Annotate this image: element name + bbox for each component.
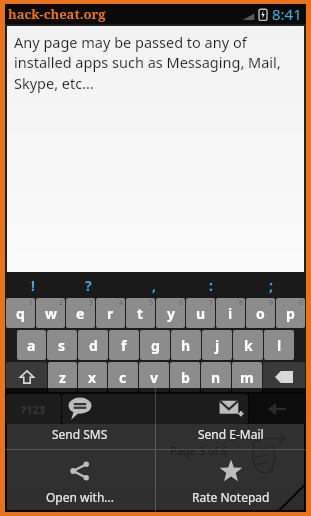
staticText: z bbox=[59, 368, 66, 387]
staticText: h bbox=[181, 336, 191, 355]
button[interactable]: w bbox=[36, 298, 65, 328]
staticText: y bbox=[167, 304, 175, 323]
staticText: m bbox=[240, 368, 254, 387]
staticText: p bbox=[286, 304, 295, 323]
button[interactable]: Shift bbox=[6, 362, 47, 392]
button[interactable]: m bbox=[232, 362, 262, 392]
button[interactable]: c bbox=[108, 362, 138, 392]
staticText: i bbox=[228, 304, 233, 323]
button[interactable]: l bbox=[264, 330, 294, 360]
button[interactable]: Rate Notepad bbox=[156, 450, 306, 512]
button[interactable]: g bbox=[140, 330, 170, 360]
staticText: 8 bbox=[239, 298, 244, 308]
staticText: 9 bbox=[269, 298, 274, 308]
staticText: ; bbox=[269, 276, 273, 295]
button[interactable]: ?123 bbox=[6, 394, 61, 424]
staticText: u bbox=[196, 304, 206, 323]
staticText: Open with... bbox=[46, 489, 114, 505]
staticText: 8:41 bbox=[272, 4, 302, 24]
staticText: c bbox=[119, 368, 127, 387]
staticText: 4 bbox=[119, 298, 124, 308]
staticText: v bbox=[150, 368, 158, 387]
staticText: 6 bbox=[179, 298, 184, 308]
button[interactable]: q bbox=[6, 298, 35, 328]
staticText: 0 bbox=[299, 298, 304, 308]
staticText: a bbox=[27, 336, 36, 355]
staticText: r bbox=[107, 304, 114, 323]
staticText: 1 bbox=[29, 298, 34, 308]
button[interactable]: k bbox=[233, 330, 263, 360]
staticText: 3 bbox=[89, 298, 94, 308]
button[interactable]: h bbox=[171, 330, 201, 360]
staticText: Rate Notepad bbox=[192, 489, 270, 505]
staticText: e bbox=[76, 304, 85, 323]
button[interactable]: Send E-Mail bbox=[156, 388, 306, 449]
button[interactable]: Send SMS bbox=[5, 388, 155, 449]
staticText: hack-cheat.org bbox=[8, 5, 106, 23]
staticText: Send SMS bbox=[52, 426, 108, 442]
staticText: Page 3 of 6 bbox=[170, 443, 228, 458]
staticText: g bbox=[151, 336, 160, 355]
staticText: Any page may be passed to any of install… bbox=[14, 32, 294, 94]
staticText: j bbox=[215, 336, 220, 355]
button[interactable]: u bbox=[186, 298, 215, 328]
staticText: k bbox=[244, 336, 253, 355]
staticText: b bbox=[181, 368, 190, 387]
staticText: s bbox=[58, 336, 66, 355]
staticText: 7 bbox=[209, 298, 214, 308]
staticText: ? bbox=[85, 276, 92, 295]
staticText: ! bbox=[31, 276, 35, 295]
staticText: q bbox=[16, 304, 25, 323]
button[interactable]: e bbox=[66, 298, 95, 328]
button[interactable]: s bbox=[47, 330, 77, 360]
staticText: x bbox=[88, 368, 97, 387]
staticText: t bbox=[137, 304, 144, 323]
button[interactable]: o bbox=[246, 298, 275, 328]
button[interactable]: r bbox=[96, 298, 125, 328]
button[interactable]: Open with... bbox=[5, 450, 155, 512]
button[interactable]: d bbox=[78, 330, 108, 360]
staticText: , bbox=[152, 276, 156, 295]
staticText: l bbox=[277, 336, 282, 355]
button[interactable]: x bbox=[78, 362, 107, 392]
button[interactable]: y bbox=[156, 298, 185, 328]
button[interactable]: t bbox=[126, 298, 155, 328]
staticText: d bbox=[89, 336, 98, 355]
button[interactable]: f bbox=[109, 330, 139, 360]
staticText: 2 bbox=[59, 298, 64, 308]
button[interactable] bbox=[62, 394, 248, 424]
staticText: 5 bbox=[149, 298, 154, 308]
button[interactable]: a bbox=[17, 330, 46, 360]
button[interactable]: p bbox=[276, 298, 305, 328]
staticText: ?123 bbox=[21, 402, 46, 417]
button[interactable]: v bbox=[139, 362, 169, 392]
staticText: : bbox=[209, 276, 213, 295]
staticText: n bbox=[211, 368, 221, 387]
staticText: w bbox=[45, 304, 57, 323]
button[interactable]: b bbox=[170, 362, 200, 392]
staticText: o bbox=[256, 304, 265, 323]
button[interactable]: i bbox=[216, 298, 245, 328]
staticText: Send E-Mail bbox=[198, 426, 264, 442]
button[interactable]: Backspace bbox=[263, 362, 305, 392]
button[interactable]: n bbox=[201, 362, 231, 392]
button[interactable]: z bbox=[48, 362, 77, 392]
staticText: f bbox=[121, 336, 127, 355]
button[interactable]: j bbox=[202, 330, 232, 360]
button[interactable]: Enter bbox=[249, 394, 305, 424]
